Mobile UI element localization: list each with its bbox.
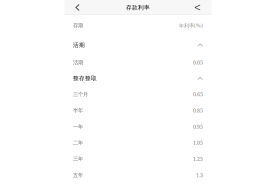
button[interactable]: Back — [69, 0, 86, 14]
staticText: 五年 — [73, 172, 83, 178]
staticText: 1.05 — [193, 139, 203, 146]
staticText: 0.85 — [193, 107, 203, 114]
button[interactable]: 三个月 — [64, 86, 211, 102]
staticText: 年利率(%) — [179, 22, 203, 29]
staticText: 一年 — [73, 123, 83, 130]
button[interactable]: 整存整取 — [64, 71, 211, 86]
button[interactable]: 半年 — [64, 102, 211, 118]
staticText: 活期 — [73, 41, 85, 49]
button[interactable]: 二年 — [64, 135, 211, 151]
staticText: 三年 — [73, 156, 83, 162]
staticText: 0.05 — [193, 59, 203, 66]
button[interactable]: 五年 — [64, 167, 211, 183]
staticText: 存款利率 — [126, 4, 150, 11]
button[interactable]: 一年 — [64, 118, 211, 135]
button[interactable]: 活期 — [64, 36, 211, 54]
staticText: 半年 — [73, 107, 83, 114]
staticText: 1.25 — [193, 155, 203, 163]
staticText: 整存整取 — [73, 75, 97, 82]
button[interactable]: Share — [188, 0, 207, 14]
staticText: 活期 — [73, 59, 83, 66]
button[interactable]: 三年 — [64, 151, 211, 167]
staticText: 二年 — [73, 139, 83, 146]
staticText: 1.3 — [196, 172, 203, 179]
staticText: 三个月 — [73, 91, 88, 97]
staticText: 0.95 — [193, 123, 203, 130]
staticText: 存期 — [73, 22, 83, 29]
staticText: 0.65 — [193, 91, 203, 98]
button[interactable]: 活期 — [64, 54, 211, 71]
